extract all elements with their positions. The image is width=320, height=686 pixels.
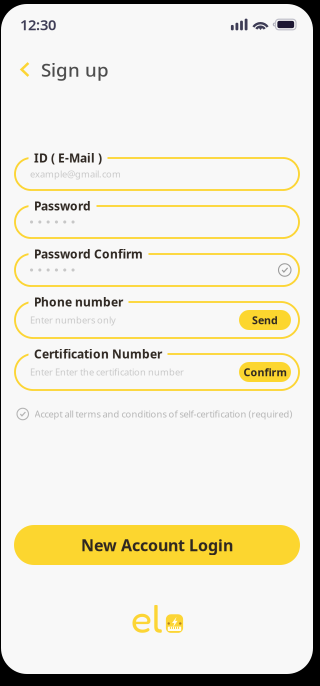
staticText: el <box>131 595 163 642</box>
staticText: example@gmail.com <box>30 168 121 180</box>
staticText: Send <box>252 313 278 327</box>
button[interactable]: Accept all terms and conditions of self-… <box>1 403 313 425</box>
staticText: Password <box>34 198 91 214</box>
button[interactable]: Send <box>239 310 291 330</box>
staticText: 12:30 <box>20 15 56 34</box>
button[interactable]: Confirm <box>239 362 291 382</box>
staticText: New Account Login <box>81 534 233 556</box>
staticText: Confirm <box>243 365 286 379</box>
staticText: Password Confirm <box>34 246 143 262</box>
staticText: Sign up <box>41 57 109 82</box>
staticText: ID ( E-Mail ) <box>34 150 102 166</box>
button[interactable]: Back <box>1 45 119 94</box>
staticText: Accept all terms and conditions of self-… <box>34 408 292 420</box>
staticText: Enter numbers only <box>30 314 116 326</box>
staticText: Enter Enter the certification number <box>30 366 184 378</box>
button[interactable]: New Account Login <box>14 525 300 565</box>
staticText: Certification Number <box>34 346 162 362</box>
staticText: Phone number <box>34 294 123 310</box>
